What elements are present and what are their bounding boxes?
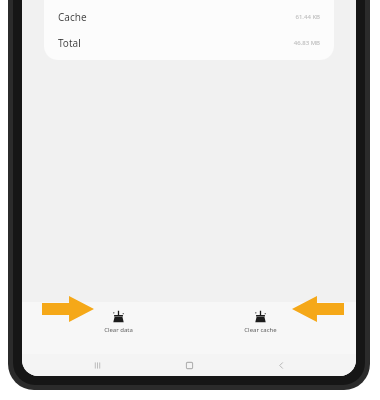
staticText: Clear data bbox=[104, 326, 133, 334]
button[interactable]: Recent apps bbox=[80, 354, 114, 376]
staticText: 61.44 KB bbox=[295, 13, 320, 21]
button[interactable]: Clear data bbox=[72, 302, 164, 354]
staticText: Clear cache bbox=[244, 326, 277, 334]
staticText: Total bbox=[58, 36, 81, 50]
button[interactable]: Clear cache bbox=[214, 302, 306, 354]
staticText: Cache bbox=[58, 10, 87, 24]
button[interactable]: Total bbox=[44, 30, 334, 56]
staticText: 46.83 MB bbox=[293, 39, 320, 47]
button[interactable]: Home bbox=[172, 354, 206, 376]
button[interactable]: Back bbox=[264, 354, 298, 376]
button[interactable]: Cache bbox=[44, 4, 334, 30]
